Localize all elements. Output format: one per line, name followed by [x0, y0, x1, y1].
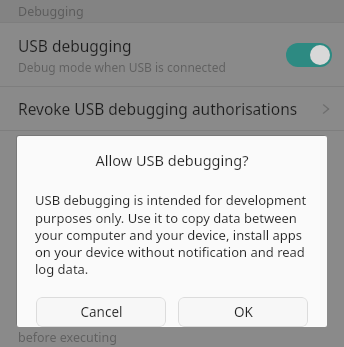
staticText: Revoke USB debugging authorisations [18, 98, 318, 119]
button[interactable]: USB debugging toggle [286, 43, 332, 67]
button[interactable]: OK [178, 297, 308, 327]
staticText: Debugging [18, 3, 84, 20]
button[interactable]: USB debugging [0, 23, 344, 86]
other: Open [318, 101, 334, 117]
staticText: USB debugging is intended for developmen… [35, 191, 311, 278]
staticText: Allow USB debugging? [17, 150, 327, 170]
button[interactable]: Revoke USB debugging authorisations [0, 87, 344, 130]
staticText: USB debugging [18, 35, 132, 56]
staticText: Cancel [80, 303, 123, 321]
staticText: before executing [18, 329, 117, 345]
staticText: Debug mode when USB is connected [18, 59, 226, 75]
staticText: OK [234, 303, 253, 321]
button[interactable]: Cancel [36, 297, 166, 327]
